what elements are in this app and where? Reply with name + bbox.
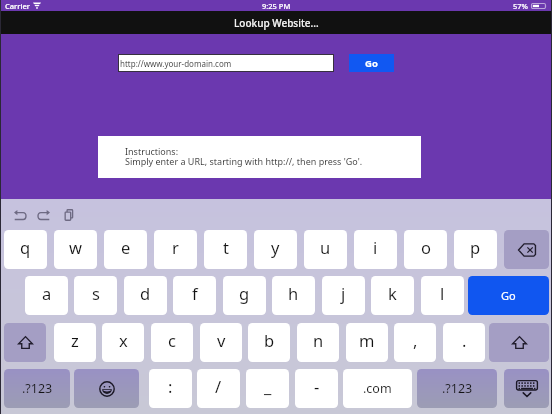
staticText: u xyxy=(320,236,331,258)
staticText: . xyxy=(462,329,467,351)
button[interactable]: p xyxy=(454,230,497,269)
button[interactable]: c xyxy=(151,323,193,362)
button[interactable]: http://www.your-domain.com xyxy=(119,55,333,71)
staticText: p xyxy=(470,236,481,258)
staticText: , xyxy=(413,329,418,351)
button[interactable]: . xyxy=(443,323,485,362)
staticText: m xyxy=(359,329,375,351)
button[interactable]: g xyxy=(223,276,266,315)
button[interactable]: b xyxy=(248,323,290,362)
button[interactable]: : xyxy=(149,369,192,408)
button[interactable]: f xyxy=(173,276,216,315)
button[interactable]: v xyxy=(200,323,242,362)
staticText: z xyxy=(71,329,79,351)
button[interactable]: q xyxy=(4,230,47,269)
button[interactable]: Redo xyxy=(33,205,55,225)
staticText: o xyxy=(421,236,431,258)
staticText: e xyxy=(121,236,131,258)
button[interactable]: , xyxy=(394,323,436,362)
button[interactable]: n xyxy=(297,323,339,362)
staticText: r xyxy=(172,236,179,258)
staticText: _ xyxy=(264,375,272,397)
staticText: b xyxy=(264,329,275,351)
staticText: c xyxy=(168,329,176,351)
staticText: t xyxy=(223,236,229,258)
button[interactable]: Copy xyxy=(58,205,80,225)
button[interactable]: _ xyxy=(246,369,289,408)
staticText: q xyxy=(20,236,31,258)
staticText: Lookup Website... xyxy=(234,16,319,30)
button[interactable]: m xyxy=(346,323,388,362)
button[interactable]: Backspace xyxy=(504,230,549,269)
button[interactable]: Undo xyxy=(9,205,31,225)
staticText: Instructions: Simply enter a URL, starti… xyxy=(125,145,363,168)
button[interactable]: Hide keyboard xyxy=(504,369,549,408)
staticText: v xyxy=(217,329,226,351)
staticText: f xyxy=(192,282,198,304)
staticText: y xyxy=(271,236,280,258)
staticText: : xyxy=(168,375,173,397)
button[interactable]: z xyxy=(54,323,96,362)
staticText: s xyxy=(92,282,100,304)
button[interactable]: s xyxy=(74,276,117,315)
button[interactable]: i xyxy=(354,230,397,269)
button[interactable]: k xyxy=(371,276,414,315)
button[interactable]: Go xyxy=(468,276,549,315)
staticText: a xyxy=(42,282,52,304)
button[interactable]: Shift xyxy=(4,323,46,362)
staticText: g xyxy=(239,282,250,304)
staticText: - xyxy=(314,375,320,397)
staticText: h xyxy=(288,282,299,304)
button[interactable]: t xyxy=(204,230,247,269)
staticText: 9:25 PM xyxy=(262,1,291,11)
button[interactable]: o xyxy=(404,230,447,269)
button[interactable]: .?123 xyxy=(4,369,70,408)
staticText: n xyxy=(313,329,324,351)
staticText: l xyxy=(440,282,445,304)
button[interactable]: u xyxy=(304,230,347,269)
staticText: d xyxy=(140,282,151,304)
staticText: Carrier xyxy=(5,1,30,11)
button[interactable]: x xyxy=(102,323,144,362)
button[interactable]: Shift xyxy=(489,323,549,362)
button[interactable]: d xyxy=(124,276,167,315)
button[interactable]: Emoji xyxy=(74,369,139,408)
button[interactable]: h xyxy=(272,276,315,315)
staticText: .?123 xyxy=(22,380,53,397)
staticText: i xyxy=(373,236,378,258)
button[interactable]: j xyxy=(322,276,365,315)
button[interactable]: l xyxy=(421,276,464,315)
staticText: Go xyxy=(365,57,378,70)
button[interactable]: y xyxy=(254,230,297,269)
staticText: http://www.your-domain.com xyxy=(120,58,232,69)
button[interactable]: .com xyxy=(343,369,412,408)
staticText: k xyxy=(388,282,397,304)
staticText: / xyxy=(215,375,222,397)
button[interactable]: Go xyxy=(349,54,394,72)
staticText: .?123 xyxy=(442,380,473,397)
button[interactable]: / xyxy=(197,369,240,408)
button[interactable]: w xyxy=(54,230,97,269)
button[interactable]: a xyxy=(25,276,68,315)
button[interactable]: e xyxy=(104,230,147,269)
staticText: Go xyxy=(501,288,516,303)
staticText: .com xyxy=(363,380,392,397)
button[interactable]: - xyxy=(295,369,338,408)
staticText: 57% xyxy=(513,1,528,11)
staticText: x xyxy=(119,329,128,351)
button[interactable]: r xyxy=(154,230,197,269)
staticText: j xyxy=(341,282,346,304)
button[interactable]: .?123 xyxy=(417,369,497,408)
staticText: w xyxy=(69,236,82,258)
